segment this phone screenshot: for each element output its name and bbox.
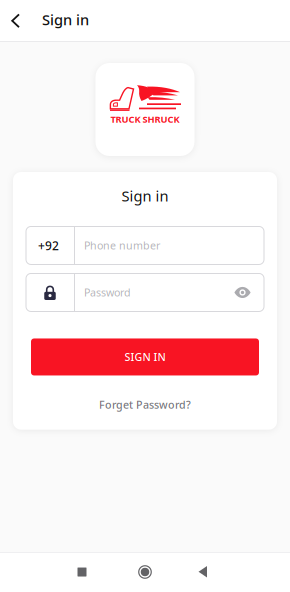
staticText: TRUCK SHRUCK (110, 113, 179, 125)
button[interactable]: Back (179, 552, 227, 592)
staticText: SIGN IN (124, 350, 165, 364)
staticText: Sign in (121, 186, 168, 205)
staticText: Forget Password? (99, 397, 191, 412)
staticText: Sign in (42, 10, 89, 29)
button[interactable]: Recent apps (58, 552, 106, 592)
button[interactable]: Forget Password? (87, 389, 203, 420)
button[interactable]: Back (0, 0, 31, 42)
button[interactable]: Show password (221, 273, 264, 311)
button[interactable]: SIGN IN (31, 338, 259, 375)
staticText: Phone number (84, 238, 160, 253)
staticText: +92 (38, 237, 59, 253)
staticText: Password (84, 285, 131, 300)
button[interactable]: Home (121, 552, 169, 592)
